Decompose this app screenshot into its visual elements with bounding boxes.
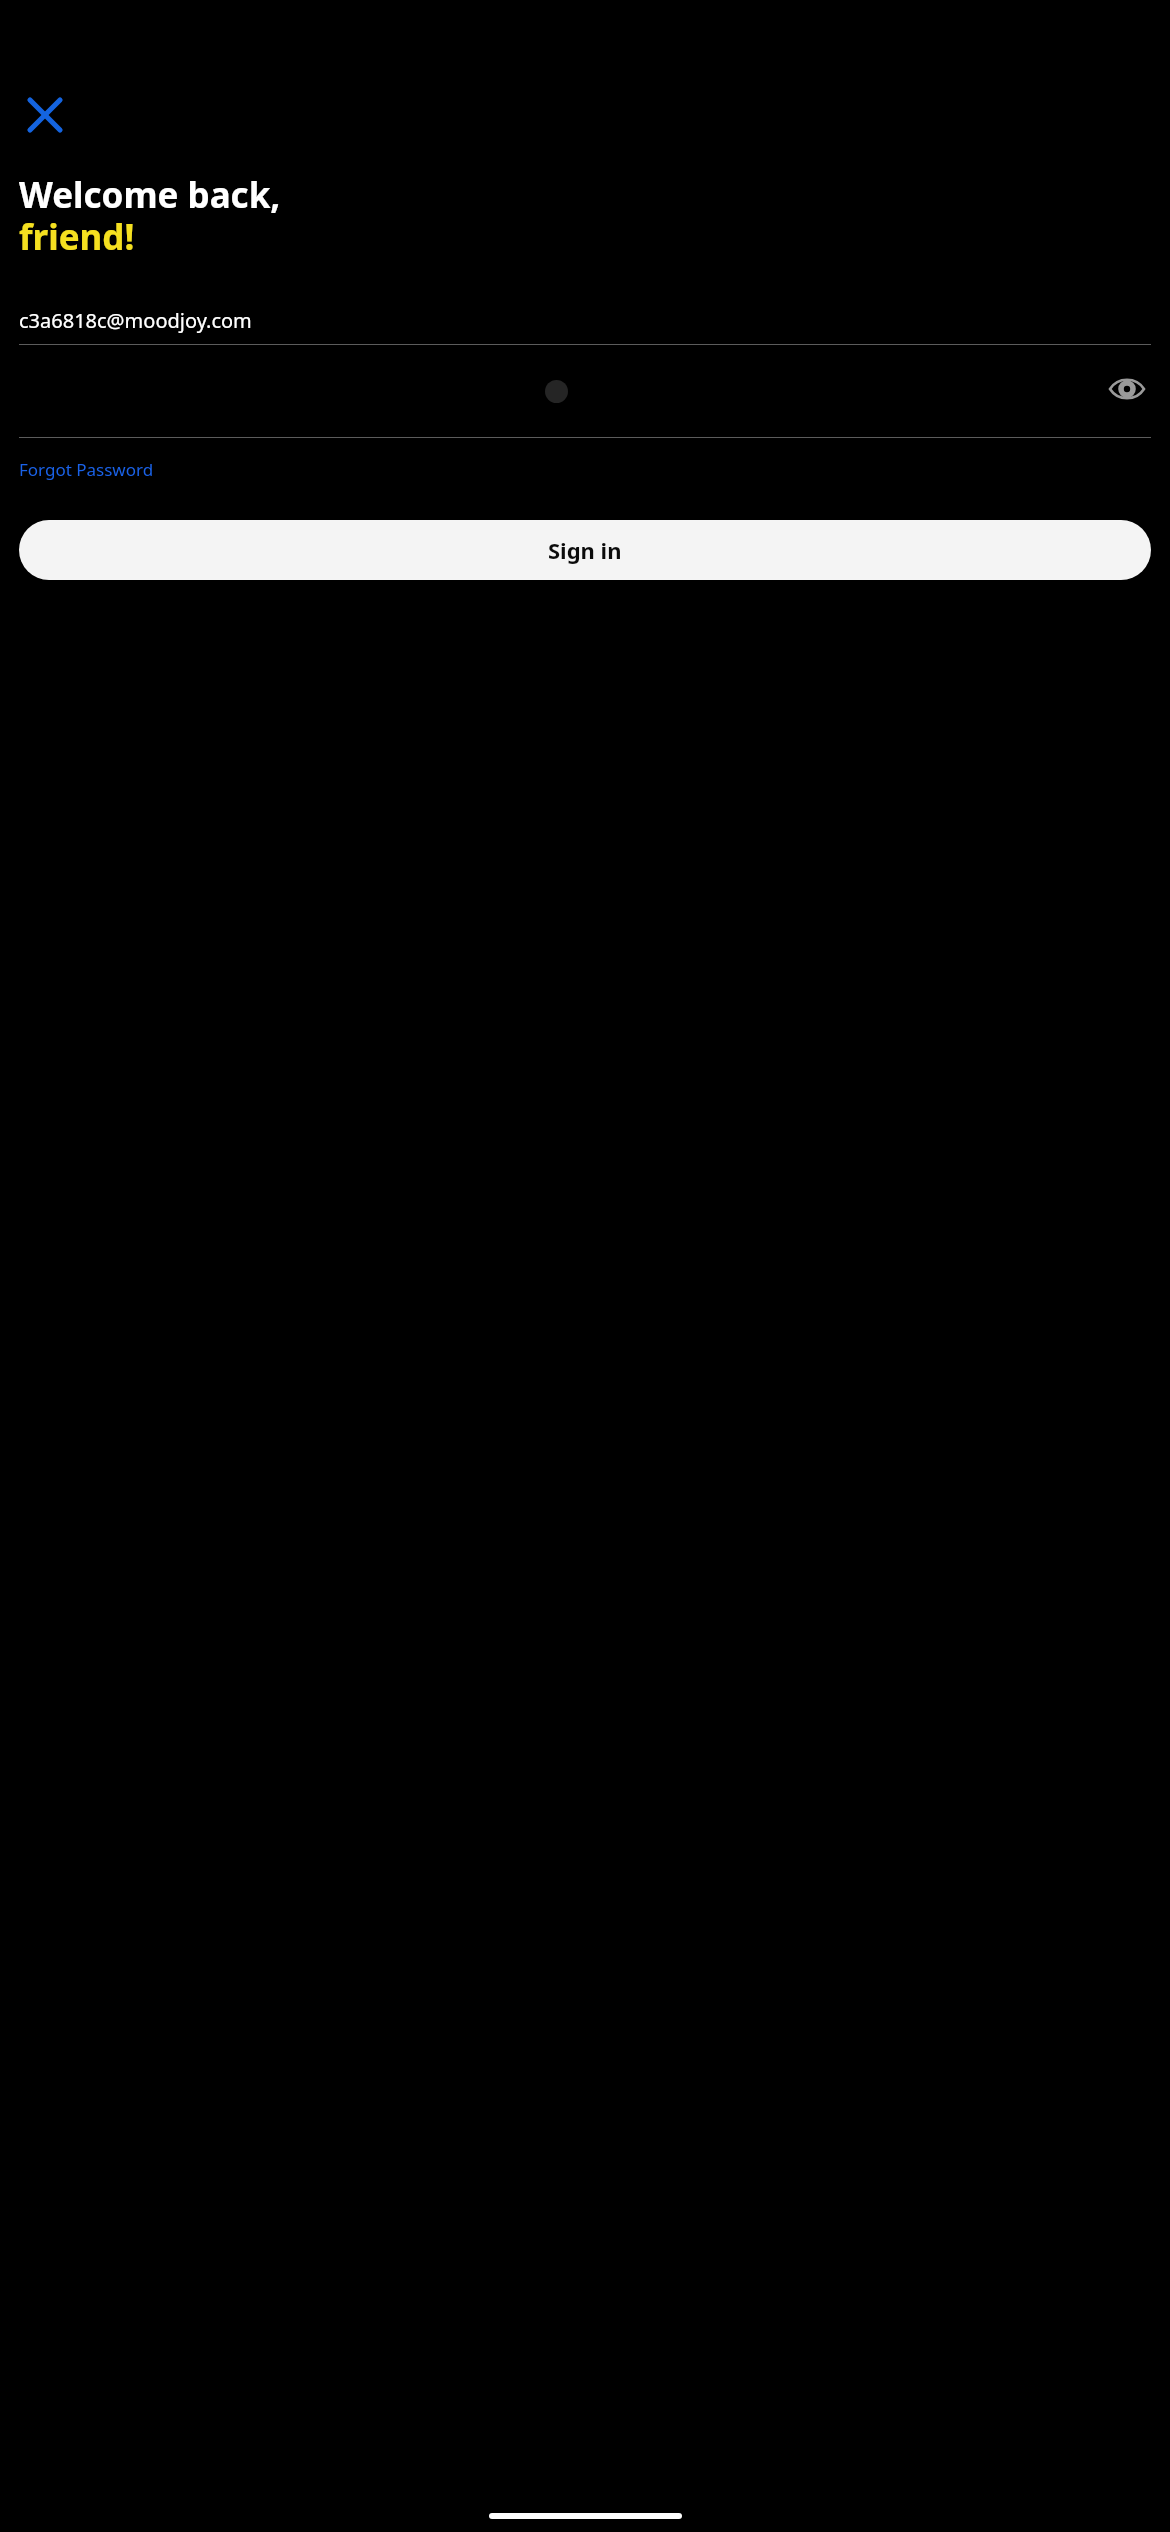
button[interactable]: Forgot Password <box>19 450 154 488</box>
button[interactable]: Show password <box>1103 365 1151 413</box>
button[interactable]: Sign in <box>19 520 1151 580</box>
staticText: c3a6818c@moodjoy.com <box>19 307 252 334</box>
button[interactable]: c3a6818c@moodjoy.com <box>19 296 1151 344</box>
staticText: Forgot Password <box>19 458 154 481</box>
button[interactable]: Show password <box>19 345 1151 437</box>
staticText: Welcome back, friend! <box>19 171 281 260</box>
staticText: Sign in <box>548 535 622 565</box>
button[interactable]: Close <box>19 89 71 141</box>
